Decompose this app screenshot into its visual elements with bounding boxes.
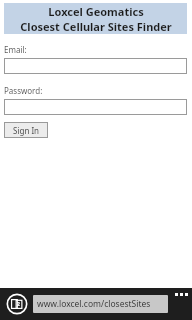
button[interactable]: Sign In [4, 122, 48, 138]
staticText: 2 [17, 301, 20, 308]
staticText: Sign In [13, 125, 40, 136]
staticText: www.loxcel.com/closestSites [37, 298, 151, 310]
staticText: Email: [4, 44, 27, 55]
button[interactable] [4, 99, 187, 115]
staticText: Password: [4, 85, 43, 96]
button[interactable]: www.loxcel.com/closestSites [33, 295, 168, 313]
button[interactable]: More options [170, 288, 192, 320]
staticText: Loxcel Geomatics [48, 4, 144, 19]
button[interactable]: Tabs, 2 open [4, 291, 30, 317]
staticText: Closest Cellular Sites Finder [20, 19, 172, 34]
button[interactable] [4, 58, 187, 74]
